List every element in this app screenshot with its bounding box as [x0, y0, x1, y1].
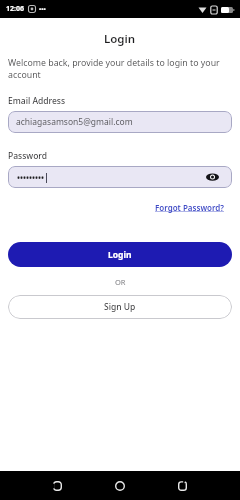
button[interactable]: Login: [8, 242, 232, 267]
staticText: Password: [8, 150, 48, 162]
button[interactable]: [172, 476, 192, 496]
button[interactable]: Forgot Password?: [155, 202, 224, 213]
staticText: achiagasamson5@gmail.com: [16, 116, 133, 128]
button[interactable]: Sign Up: [8, 295, 232, 319]
button[interactable]: achiagasamson5@gmail.com: [8, 111, 232, 133]
staticText: Login: [104, 31, 136, 47]
staticText: OR: [115, 277, 126, 287]
button[interactable]: •••••••••: [8, 166, 232, 188]
staticText: •••••••••: [17, 172, 45, 183]
staticText: Sign Up: [104, 301, 136, 313]
button[interactable]: [47, 476, 67, 496]
button[interactable]: [110, 476, 130, 496]
button[interactable]: [206, 172, 219, 182]
staticText: 12:06: [6, 4, 24, 14]
staticText: Welcome back, provide your details to lo…: [8, 57, 232, 81]
staticText: Email Address: [8, 95, 66, 107]
staticText: Login: [108, 249, 132, 261]
staticText: •••: [39, 5, 46, 13]
